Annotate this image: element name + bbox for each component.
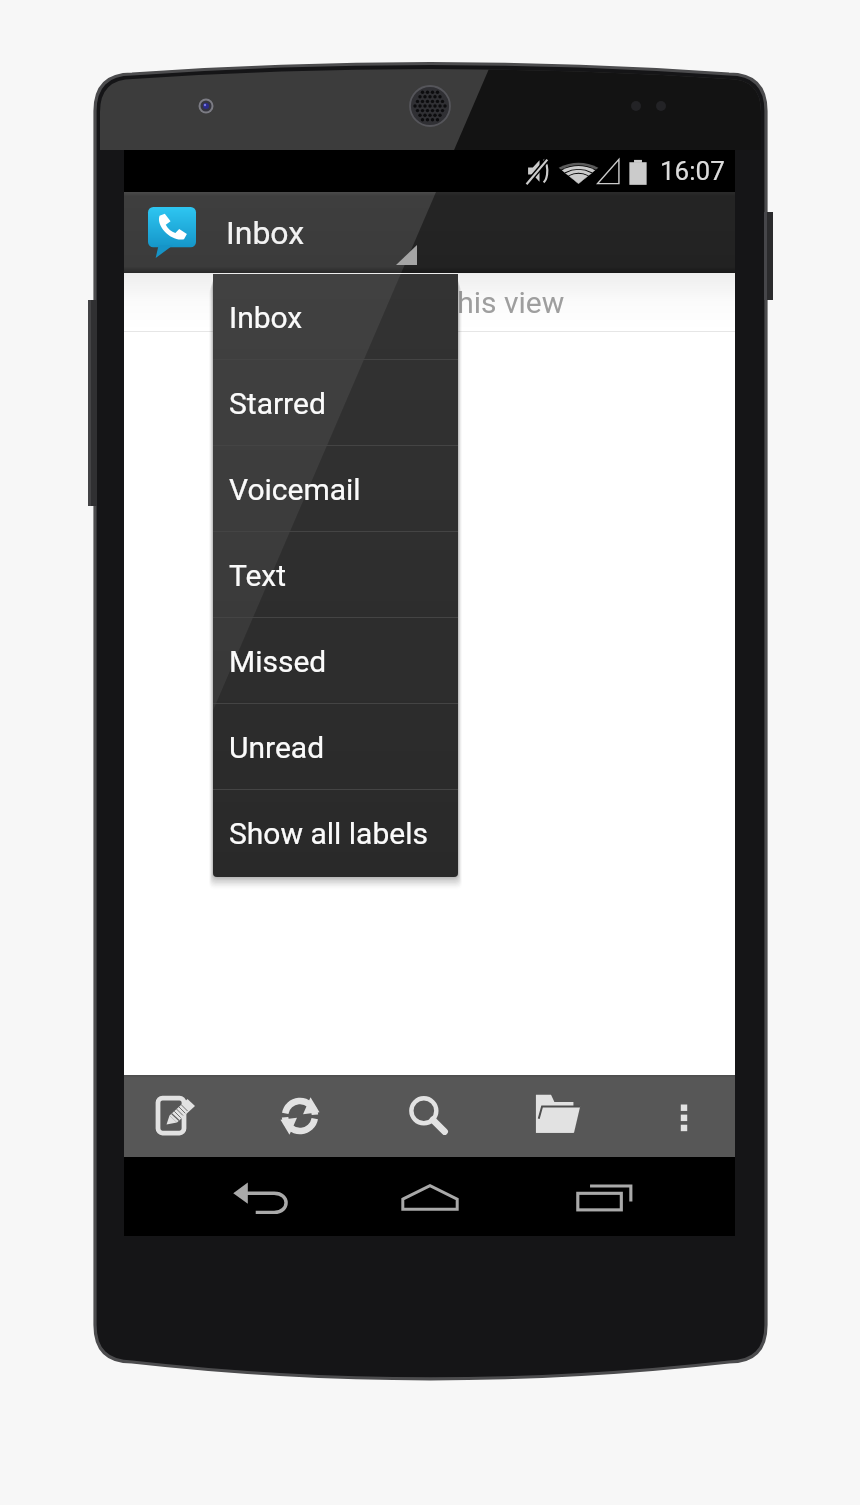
- button[interactable]: Show all labels: [213, 790, 458, 876]
- staticText: Text: [229, 558, 287, 593]
- button[interactable]: Text: [213, 532, 458, 618]
- button[interactable]: Inbox: [213, 274, 458, 360]
- staticText: No messages in this view: [225, 285, 565, 320]
- button[interactable]: Search: [388, 1075, 468, 1157]
- button[interactable]: Starred: [213, 360, 458, 446]
- button[interactable]: Unread: [213, 704, 458, 790]
- button[interactable]: Recents: [560, 1157, 650, 1236]
- button[interactable]: Voicemail: [213, 446, 458, 532]
- staticText: 16:07: [660, 156, 725, 186]
- button[interactable]: Refresh: [261, 1075, 341, 1157]
- button[interactable]: Home: [385, 1157, 475, 1236]
- button[interactable]: Compose: [136, 1075, 216, 1157]
- staticText: Voicemail: [229, 472, 361, 507]
- staticText: Inbox: [226, 214, 305, 252]
- button[interactable]: Back: [216, 1157, 306, 1236]
- staticText: Show all labels: [229, 816, 428, 851]
- staticText: Unread: [229, 730, 325, 765]
- staticText: Inbox: [229, 300, 303, 335]
- staticText: Starred: [229, 386, 326, 421]
- button[interactable]: Missed: [213, 618, 458, 704]
- button[interactable]: Inbox: [124, 192, 735, 273]
- staticText: Missed: [229, 644, 327, 679]
- button[interactable]: More options: [644, 1075, 724, 1157]
- button[interactable]: Folders: [520, 1075, 600, 1157]
